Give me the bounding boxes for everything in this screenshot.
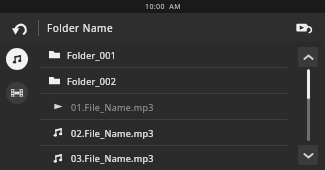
staticText: 03.File_Name.mp3 <box>71 152 154 164</box>
button[interactable]: 02.File_Name.mp3 <box>0 120 325 145</box>
staticText: 10:00 AM <box>145 2 181 12</box>
staticText: Folder Name <box>47 21 114 35</box>
button[interactable]: Folder_001 <box>0 42 325 67</box>
button[interactable]: Send to screen <box>291 15 317 41</box>
button[interactable]: 01.File_Name.mp3 <box>0 94 325 119</box>
button[interactable]: Music <box>6 48 28 70</box>
button[interactable]: Scroll down <box>298 145 318 165</box>
button[interactable]: Video <box>6 82 28 104</box>
button[interactable]: 03.File_Name.mp3 <box>0 146 325 170</box>
button[interactable]: Back <box>6 14 34 42</box>
staticText: Folder_002 <box>67 75 117 87</box>
staticText: Folder_001 <box>67 49 117 61</box>
staticText: 01.File_Name.mp3 <box>71 101 154 113</box>
staticText: 02.File_Name.mp3 <box>71 127 154 139</box>
button[interactable]: Scroll up <box>298 47 318 67</box>
button[interactable]: Folder_002 <box>0 68 325 93</box>
